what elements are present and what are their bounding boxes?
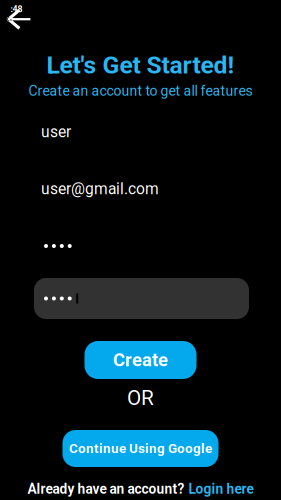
staticText: user@gmail.com: [41, 180, 159, 198]
button[interactable]: Back: [0, 0, 42, 34]
staticText: Login here: [188, 481, 253, 497]
button[interactable]: Continue Using Google: [62, 430, 218, 467]
staticText: Continue Using Google: [69, 441, 212, 456]
button[interactable]: Login here: [188, 481, 253, 497]
staticText: OR: [127, 386, 154, 410]
button[interactable]: Create: [84, 341, 196, 379]
staticText: :48: [10, 4, 22, 14]
staticText: Create an account to get all features: [28, 83, 252, 99]
staticText: Create: [113, 349, 168, 371]
staticText: Let's Get Started!: [46, 50, 234, 79]
staticText: Already have an account?: [27, 481, 184, 497]
staticText: user: [41, 123, 71, 141]
